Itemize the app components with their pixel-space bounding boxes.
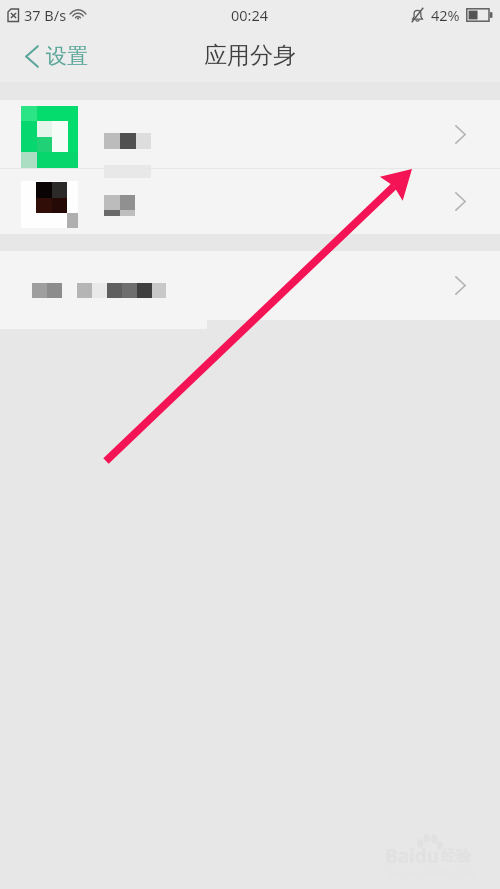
staticText: 37 B/s bbox=[24, 5, 67, 25]
other: Open bbox=[455, 125, 466, 144]
button[interactable]: Open bbox=[0, 100, 500, 168]
other: Back bbox=[25, 45, 39, 68]
button[interactable]: Open bbox=[0, 169, 500, 234]
staticText: 应用分身 bbox=[204, 41, 296, 70]
staticText: 设置 bbox=[46, 43, 88, 69]
staticText: 00:24 bbox=[231, 5, 269, 25]
button[interactable]: Back bbox=[0, 35, 102, 77]
button[interactable]: Open bbox=[0, 251, 500, 320]
staticText: 42% bbox=[431, 5, 460, 25]
other: Open bbox=[455, 276, 466, 295]
other: Open bbox=[455, 192, 466, 211]
